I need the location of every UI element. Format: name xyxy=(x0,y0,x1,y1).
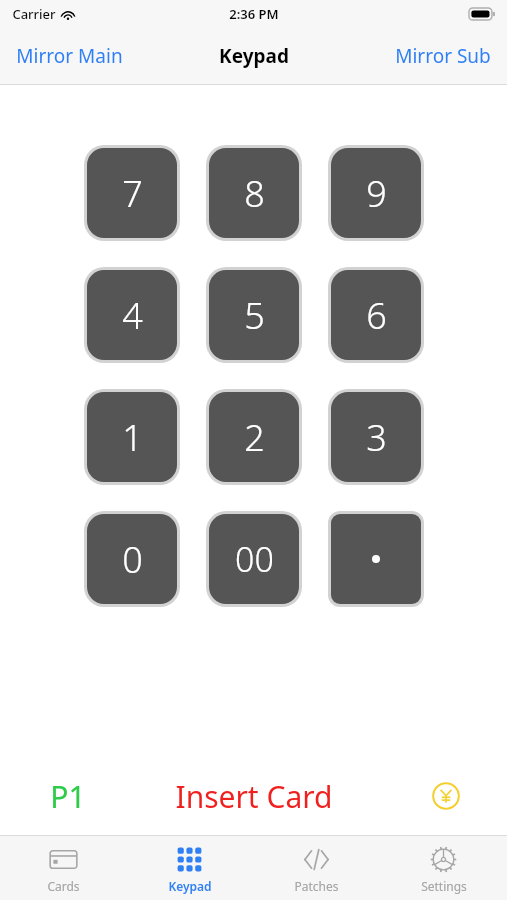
button[interactable]: 9 xyxy=(331,148,421,238)
staticText: Mirror Sub xyxy=(395,43,491,69)
staticText: Keypad xyxy=(219,43,289,69)
button[interactable]: 4 xyxy=(87,270,177,360)
staticText: 2 xyxy=(244,413,265,462)
button[interactable]: 00 xyxy=(209,514,299,604)
button[interactable]: Settings xyxy=(380,836,507,900)
staticText: 9 xyxy=(366,169,387,218)
button[interactable]: 2 xyxy=(209,392,299,482)
button[interactable]: Insert Card xyxy=(169,770,339,823)
staticText: 0 xyxy=(122,535,143,584)
staticText: 4 xyxy=(122,291,143,340)
staticText: Mirror Main xyxy=(16,43,123,69)
staticText: Settings xyxy=(421,878,467,894)
button[interactable]: 6 xyxy=(331,270,421,360)
button[interactable]: 8 xyxy=(209,148,299,238)
staticText: Keypad xyxy=(168,878,212,894)
staticText: 7 xyxy=(122,169,143,218)
staticText: Patches xyxy=(294,878,339,894)
button[interactable]: 5 xyxy=(209,270,299,360)
staticText: 1 xyxy=(122,413,143,462)
staticText: P1 xyxy=(50,776,86,817)
button[interactable] xyxy=(331,514,421,604)
button[interactable]: Mirror Main xyxy=(0,33,139,79)
staticText: 3 xyxy=(366,413,387,462)
button[interactable]: 7 xyxy=(87,148,177,238)
button[interactable]: Patches xyxy=(253,836,380,900)
staticText: Carrier xyxy=(12,5,56,23)
button[interactable]: Keypad xyxy=(126,836,253,900)
staticText: 6 xyxy=(366,291,387,340)
button[interactable]: 0 xyxy=(87,514,177,604)
button[interactable]: 3 xyxy=(331,392,421,482)
button[interactable]: Cards xyxy=(0,836,126,900)
button[interactable]: 1 xyxy=(87,392,177,482)
staticText: 5 xyxy=(244,291,265,340)
staticText: 2:36 PM xyxy=(229,5,279,23)
staticText: Cards xyxy=(47,878,80,894)
button[interactable]: Credit xyxy=(429,779,463,813)
button[interactable]: Mirror Sub xyxy=(379,33,507,79)
staticText: Insert Card xyxy=(175,776,333,817)
staticText: 00 xyxy=(235,536,274,582)
staticText: 8 xyxy=(244,169,265,218)
button[interactable]: P1 xyxy=(44,770,92,823)
